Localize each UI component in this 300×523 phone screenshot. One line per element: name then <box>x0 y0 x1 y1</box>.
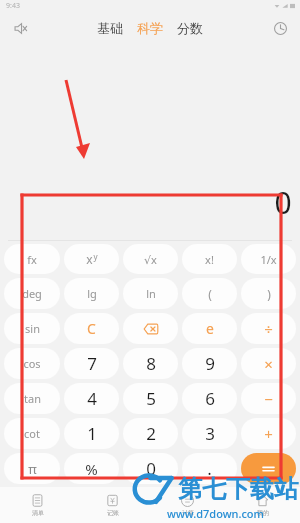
staticText: ( <box>208 286 212 302</box>
staticText: e <box>206 319 214 338</box>
button[interactable]: 9 <box>182 348 237 379</box>
button[interactable]: ln <box>123 278 178 309</box>
staticText: 4 <box>87 387 97 410</box>
staticText: 我的 <box>257 509 269 517</box>
staticText: 7 <box>87 352 97 375</box>
staticText: . <box>207 457 212 480</box>
staticText: sin <box>25 321 40 336</box>
staticText: 1 <box>87 422 97 445</box>
staticText: cot <box>24 426 40 441</box>
staticText: fx <box>27 252 37 267</box>
staticText: x! <box>205 252 214 267</box>
staticText: 1/x <box>260 252 277 267</box>
button[interactable]: 5 <box>123 383 178 414</box>
button[interactable]: π <box>4 453 60 484</box>
staticText: ln <box>146 286 156 301</box>
staticText: x <box>86 251 93 267</box>
staticText: 6 <box>205 387 215 410</box>
staticText: tan <box>24 391 41 406</box>
button[interactable]: lg <box>64 278 119 309</box>
staticText: lg <box>87 286 97 301</box>
button[interactable]: √x <box>123 244 178 274</box>
staticText: 3 <box>205 422 215 445</box>
staticText: π <box>28 460 37 478</box>
button[interactable]: 2 <box>123 418 178 449</box>
button[interactable]: e <box>182 313 237 344</box>
staticText: 清单 <box>32 509 44 517</box>
button[interactable]: 7 <box>64 348 119 379</box>
button[interactable]: 8 <box>123 348 178 379</box>
button[interactable]: tan <box>4 383 60 414</box>
button[interactable]: 1 <box>64 418 119 449</box>
button[interactable]: ( <box>182 278 237 309</box>
button[interactable]: 科学 <box>134 18 166 38</box>
button[interactable]: 计算 <box>150 487 225 523</box>
button[interactable]: × <box>241 348 296 379</box>
button[interactable]: C <box>64 313 119 344</box>
button[interactable]: 基础 <box>94 18 126 38</box>
staticText: − <box>264 389 273 409</box>
staticText: 分数 <box>177 20 203 36</box>
staticText: 2 <box>146 422 156 445</box>
staticText: 科学 <box>137 20 163 36</box>
staticText: ) <box>267 286 271 302</box>
button[interactable]: − <box>241 383 296 414</box>
button[interactable]: deg <box>4 278 60 309</box>
button[interactable]: 分数 <box>174 18 206 38</box>
button[interactable]: 6 <box>182 383 237 414</box>
button[interactable]: 3 <box>182 418 237 449</box>
staticText: y <box>93 251 98 262</box>
staticText: 8 <box>146 352 156 375</box>
button[interactable]: cot <box>4 418 60 449</box>
staticText: 计算 <box>182 509 194 517</box>
staticText: 记账 <box>107 509 119 517</box>
button[interactable]: ) <box>241 278 296 309</box>
staticText: 9:43 <box>6 1 20 11</box>
button[interactable]: % <box>64 453 119 484</box>
staticText: 基础 <box>97 20 123 36</box>
staticText: × <box>264 354 273 374</box>
staticText: 第七下载站 <box>178 474 298 504</box>
button[interactable]: 0 <box>123 453 178 484</box>
staticText: www.d7down.com <box>167 506 264 521</box>
button[interactable]: 我的 <box>225 487 300 523</box>
button[interactable]: 记账 <box>75 487 150 523</box>
button[interactable]: 1/x <box>241 244 296 274</box>
button[interactable]: History <box>268 16 292 40</box>
staticText: + <box>264 424 273 444</box>
button[interactable]: ÷ <box>241 313 296 344</box>
button[interactable]: x! <box>182 244 237 274</box>
staticText: ÷ <box>264 319 273 339</box>
button[interactable]: 4 <box>64 383 119 414</box>
button[interactable]: Backspace <box>123 313 178 344</box>
button[interactable] <box>241 453 296 484</box>
staticText: 9 <box>205 352 215 375</box>
staticText: % <box>85 459 98 479</box>
button[interactable]: fx <box>4 244 60 274</box>
button[interactable]: x <box>64 244 119 274</box>
staticText: C <box>87 319 96 338</box>
staticText: 5 <box>146 387 156 410</box>
button[interactable]: + <box>241 418 296 449</box>
staticText: √x <box>144 252 157 267</box>
staticText: 0 <box>146 457 156 480</box>
button[interactable]: 清单 <box>0 487 75 523</box>
button[interactable]: sin <box>4 313 60 344</box>
staticText: cos <box>23 356 41 371</box>
staticText: deg <box>22 286 42 301</box>
button[interactable]: Sound off <box>8 16 32 40</box>
button[interactable]: cos <box>4 348 60 379</box>
button[interactable]: . <box>182 453 237 484</box>
staticText: 0 <box>274 182 292 223</box>
